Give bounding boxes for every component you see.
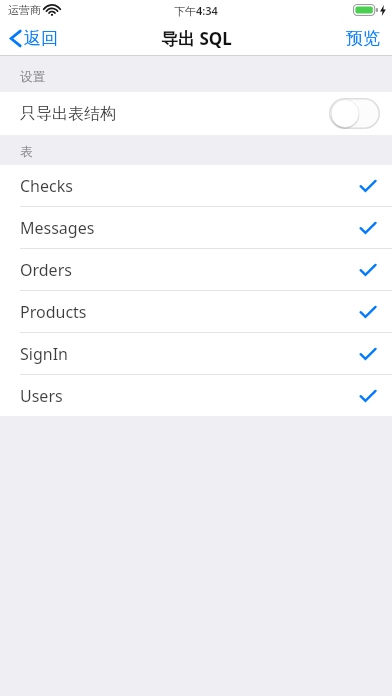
staticText: 设置 [20, 69, 45, 85]
staticText: 只导出表结构 [20, 104, 116, 124]
staticText: 表 [20, 144, 33, 160]
button[interactable]: 返回 [0, 20, 68, 56]
staticText: Orders [20, 259, 72, 281]
button[interactable]: Messages [0, 207, 392, 248]
button[interactable]: Users [0, 375, 392, 416]
button[interactable]: Products [0, 291, 392, 332]
other: 已选中 [360, 264, 376, 276]
other: 已选中 [360, 180, 376, 192]
other: 返回 [10, 29, 21, 48]
button[interactable]: 只导出表结构开关 [329, 98, 380, 129]
staticText: Users [20, 385, 63, 407]
staticText: SignIn [20, 343, 68, 365]
other: 已选中 [360, 222, 376, 234]
staticText: 下午4:34 [174, 3, 218, 18]
button[interactable]: SignIn [0, 333, 392, 374]
button[interactable]: Checks [0, 165, 392, 206]
staticText: Checks [20, 175, 73, 197]
other: 已选中 [360, 306, 376, 318]
staticText: 返回 [24, 28, 58, 49]
button[interactable]: 预览 [334, 20, 392, 56]
other: 已选中 [360, 348, 376, 360]
staticText: 导出 SQL [161, 27, 232, 50]
staticText: Messages [20, 217, 95, 239]
other: 已选中 [360, 390, 376, 402]
button[interactable]: Orders [0, 249, 392, 290]
staticText: Products [20, 301, 87, 323]
staticText: 运营商 [8, 3, 41, 17]
staticText: 预览 [346, 28, 380, 49]
button[interactable]: 只导出表结构 [0, 92, 392, 135]
